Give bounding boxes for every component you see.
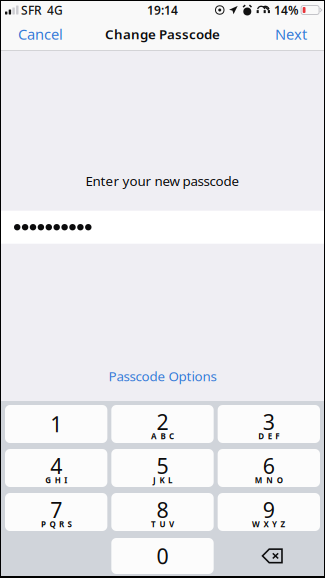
staticText: O — [277, 475, 283, 485]
staticText: B — [160, 431, 165, 441]
button[interactable]: 3 — [218, 405, 320, 443]
staticText: H — [55, 475, 61, 485]
staticText: 0 — [156, 542, 168, 570]
staticText: V — [169, 519, 174, 529]
staticText: 8 — [156, 495, 168, 524]
staticText: E — [268, 431, 272, 441]
staticText: N — [266, 475, 273, 485]
staticText: Cancel — [18, 24, 63, 44]
staticText: 9 — [263, 495, 275, 524]
staticText: 4 — [50, 451, 62, 480]
button[interactable]: 7 — [5, 493, 107, 531]
staticText: M — [255, 475, 263, 485]
staticText: W — [252, 519, 260, 529]
button[interactable]: 5 — [111, 449, 214, 487]
staticText: 2 — [156, 407, 168, 436]
button[interactable]: 6 — [218, 449, 320, 487]
staticText: Enter your new passcode — [85, 172, 239, 190]
staticText: G — [45, 475, 51, 485]
staticText: T — [151, 519, 156, 529]
staticText: C — [169, 431, 174, 441]
staticText: 7 — [50, 495, 62, 524]
staticText: 6 — [263, 451, 275, 480]
staticText: S — [67, 519, 71, 529]
staticText: Next — [275, 24, 307, 44]
staticText: SFR — [21, 2, 42, 18]
button[interactable]: Delete — [218, 538, 320, 574]
button[interactable]: 9 — [218, 493, 320, 531]
staticText: X — [264, 519, 269, 529]
staticText: 1 — [50, 410, 62, 438]
staticText: Change Passcode — [105, 25, 220, 43]
staticText: 5 — [156, 451, 168, 480]
staticText: Y — [272, 519, 277, 529]
staticText: 19:14 — [147, 2, 178, 18]
button[interactable]: 8 — [111, 493, 214, 531]
staticText: L — [168, 475, 172, 485]
staticText: Q — [49, 519, 55, 529]
staticText: K — [159, 475, 164, 485]
staticText: 4G — [47, 2, 63, 18]
staticText: F — [275, 431, 279, 441]
staticText: D — [258, 431, 264, 441]
staticText: Z — [281, 519, 286, 529]
button[interactable]: Passcode Options — [96, 361, 228, 391]
staticText: I — [64, 475, 67, 485]
staticText: 14% — [274, 2, 299, 18]
staticText: Passcode Options — [108, 367, 216, 385]
button[interactable]: 4 — [5, 449, 107, 487]
staticText: P — [41, 519, 46, 529]
button[interactable]: 0 — [111, 538, 214, 574]
staticText: U — [159, 519, 165, 529]
button[interactable]: 2 — [111, 405, 214, 443]
staticText: A — [151, 431, 157, 441]
staticText: 3 — [263, 407, 275, 436]
staticText: J — [153, 475, 156, 485]
button[interactable]: 1 — [5, 405, 107, 443]
button[interactable]: Next — [266, 19, 316, 51]
button[interactable]: Cancel — [9, 19, 72, 51]
staticText: R — [59, 519, 64, 529]
